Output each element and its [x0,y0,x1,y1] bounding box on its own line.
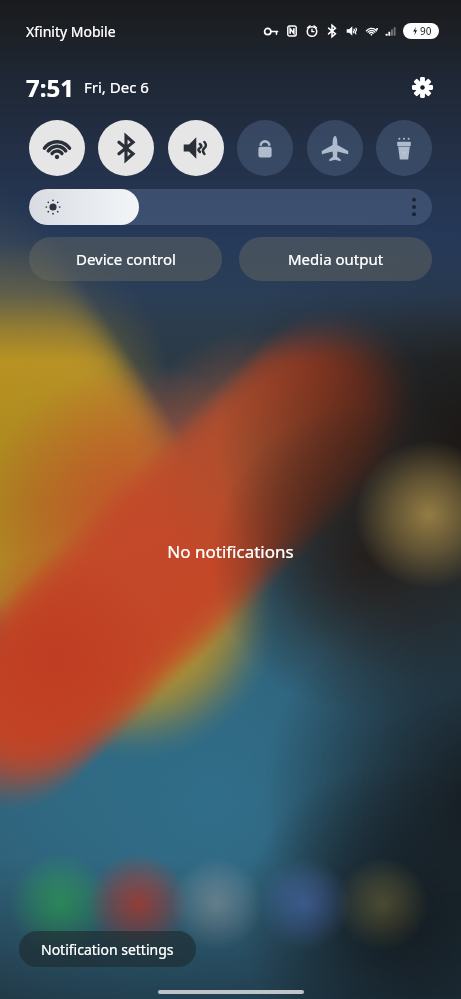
button[interactable]: Wi-Fi [29,120,85,176]
staticText: No notifications [167,540,294,563]
button[interactable]: Notification settings [19,931,196,967]
staticText: Media output [288,249,384,269]
staticText: Device control [76,249,176,269]
button[interactable]: Device control [29,237,222,281]
button[interactable]: Flashlight [376,120,432,176]
staticText: 90 [420,24,432,38]
button[interactable]: Device lock [237,120,293,176]
button[interactable]: Settings [405,70,439,104]
staticText: Xfinity Mobile [26,22,116,41]
button[interactable]: Brightness [29,189,432,225]
button[interactable]: Media output [239,237,432,281]
button[interactable]: Ringer mute [168,120,224,176]
staticText: Fri, Dec 6 [84,77,149,97]
staticText: Notification settings [41,940,174,959]
button[interactable]: Bluetooth [98,120,154,176]
button[interactable]: Airplane mode [307,120,363,176]
staticText: 7:51 [26,71,74,104]
